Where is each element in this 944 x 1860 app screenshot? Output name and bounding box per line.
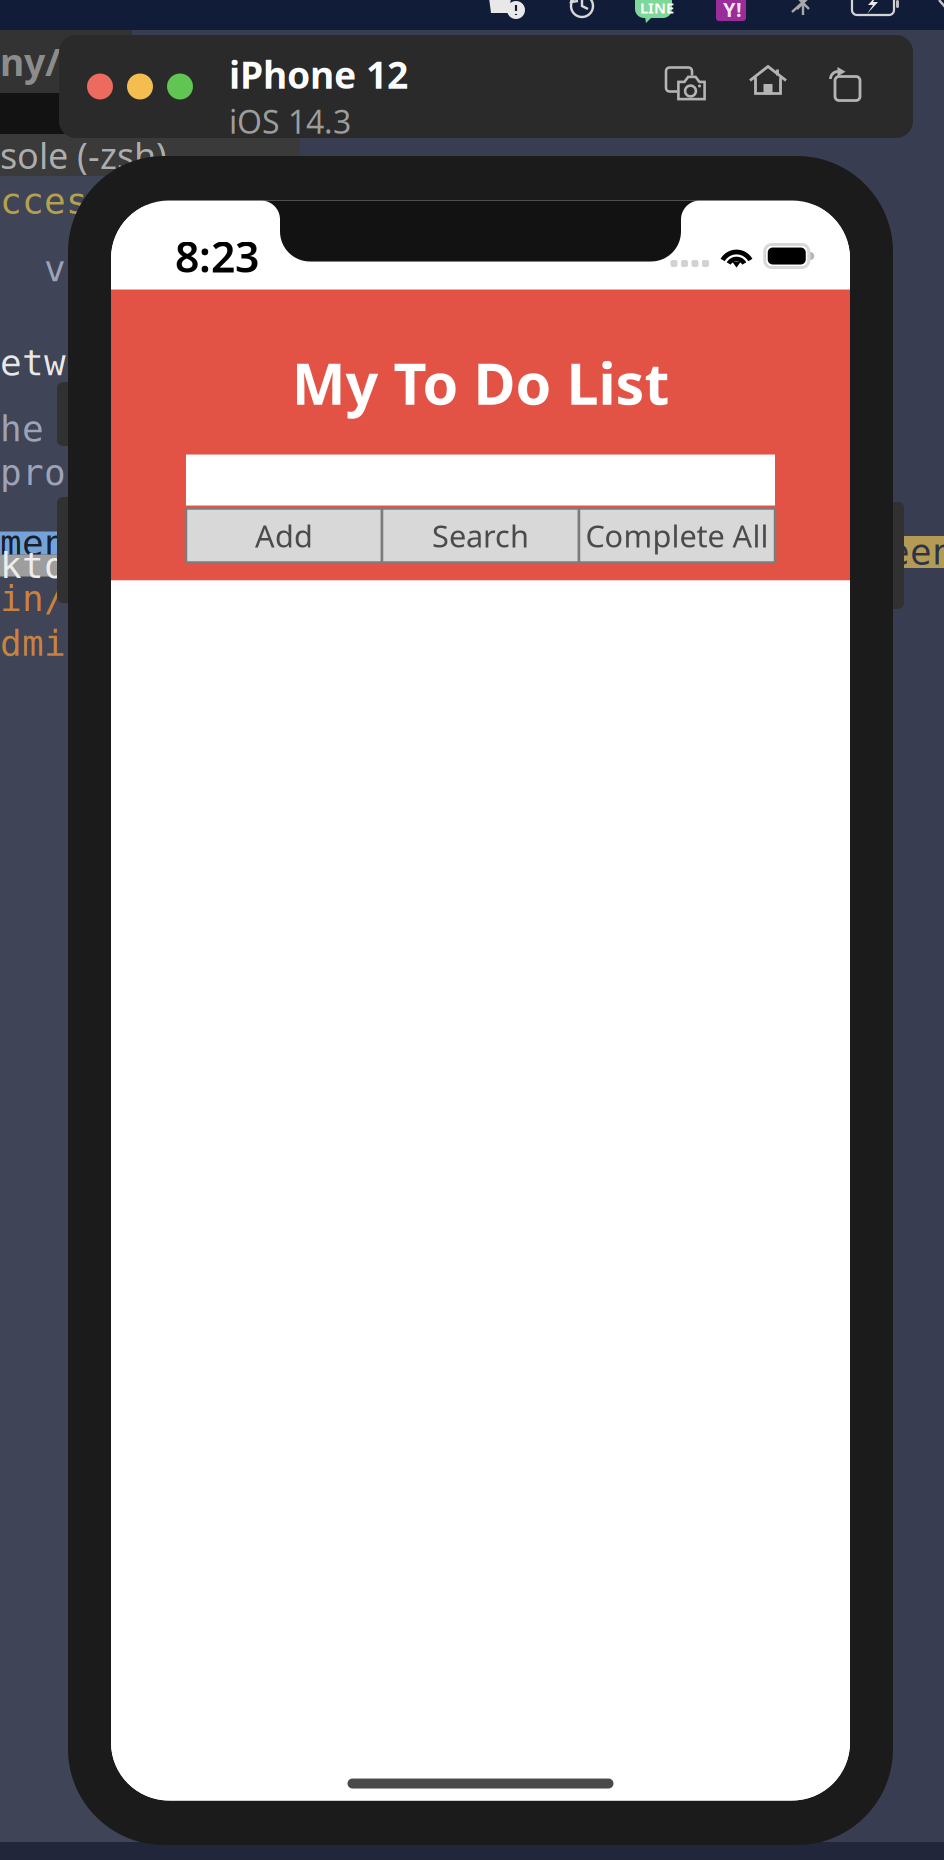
staticText: 8:23 [175,228,259,284]
staticText: Search [432,515,529,556]
button[interactable]: Search [382,508,579,562]
button[interactable]: Home [749,62,791,100]
staticText: sole (-zsh) [0,131,167,179]
button[interactable]: Rotate [823,62,863,102]
staticText: Y! [723,0,742,23]
staticText: view [0,248,132,290]
staticText: LINE [640,0,674,17]
staticText: ments [0,522,110,564]
button[interactable]: Zoom [167,73,193,99]
staticText: etwork [0,342,132,384]
staticText: iOS 14.3 [229,100,351,142]
staticText: in/ [0,577,66,619]
staticText: My To Do List [291,344,669,421]
button[interactable]: Close [87,73,113,99]
button[interactable]: Complete All [579,508,775,562]
staticText: ny/D [0,37,87,86]
staticText: Complete All [585,515,768,556]
button[interactable]: Add [186,508,382,562]
staticText: he de [0,408,110,450]
button[interactable]: Minimise [127,73,153,99]
button[interactable]: Take Screenshot [664,62,708,102]
staticText: dmin_ [0,622,110,664]
staticText: iPhone 12 [229,49,408,99]
staticText: produ [0,452,110,493]
staticText: ccessful [0,180,176,222]
staticText: een [888,531,944,573]
staticText: Add [255,515,313,556]
staticText: ktop/ [0,545,110,586]
